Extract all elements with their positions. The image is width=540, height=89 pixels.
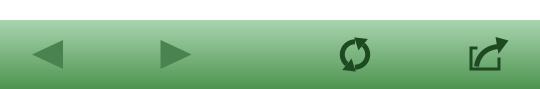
button[interactable]: Reload	[311, 20, 399, 89]
button[interactable]: Share	[444, 20, 532, 89]
button[interactable]: Previous page	[3, 20, 91, 89]
button[interactable]: Next page	[132, 20, 220, 89]
